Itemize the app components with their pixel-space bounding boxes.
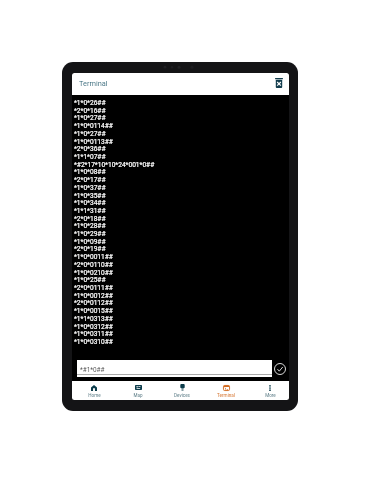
staticText: *2*0*0111## (74, 284, 113, 292)
staticText: *1*0*25## (74, 276, 106, 284)
staticText: *1*0*09## (74, 238, 106, 246)
staticText: Terminal (79, 79, 108, 88)
staticText: Devices (174, 393, 190, 398)
staticText: *2*0*17## (74, 176, 106, 184)
staticText: *#1*0## (80, 366, 105, 374)
button[interactable]: Terminal (204, 381, 248, 400)
staticText: *1*0*0310## (74, 338, 113, 346)
staticText: *1*0*0311## (74, 330, 113, 338)
staticText: Home (88, 393, 101, 398)
staticText: *1*1*31## (74, 207, 106, 215)
staticText: *#2*17*10*10*24*001*0## (74, 161, 155, 169)
staticText: *1*0*35## (74, 192, 106, 200)
staticText: *1*1*0313## (74, 315, 113, 323)
staticText: *1*0*0312## (74, 323, 113, 331)
button[interactable]: Clear terminal (272, 76, 286, 90)
staticText: *2*0*0110## (74, 261, 113, 269)
staticText: Terminal (217, 393, 235, 398)
button[interactable]: Map (116, 381, 160, 400)
staticText: *2*0*18## (74, 215, 106, 223)
staticText: *1*0*37## (74, 184, 106, 192)
staticText: *1*0*0210## (74, 269, 113, 277)
staticText: Map (133, 393, 143, 398)
button[interactable]: Devices (160, 381, 204, 400)
staticText: *1*0*27## (74, 114, 106, 122)
staticText: *2*0*36## (74, 145, 106, 153)
staticText: More (265, 393, 276, 398)
button[interactable]: More (248, 381, 289, 400)
staticText: *1*0*0011## (74, 253, 113, 261)
staticText: *1*0*08## (74, 168, 106, 176)
button[interactable]: Home (72, 381, 116, 400)
staticText: *1*0*29## (74, 230, 106, 238)
staticText: *1*1*07## (74, 153, 106, 161)
staticText: *2*0*0112## (74, 299, 113, 307)
staticText: *1*0*0113## (74, 138, 113, 146)
staticText: *1*0*28## (74, 222, 106, 230)
staticText: *1*0*26## (74, 99, 106, 107)
staticText: *2*0*16## (74, 107, 106, 115)
staticText: *2*0*19## (74, 245, 106, 253)
staticText: *1*0*34## (74, 199, 106, 207)
staticText: *1*0*27## (74, 130, 106, 138)
staticText: *1*0*0015## (74, 307, 113, 315)
button[interactable]: Send command (273, 362, 287, 376)
button[interactable]: *#1*0## (77, 360, 272, 377)
staticText: *1*0*0114## (74, 122, 113, 130)
staticText: *1*0*0012## (74, 292, 113, 300)
